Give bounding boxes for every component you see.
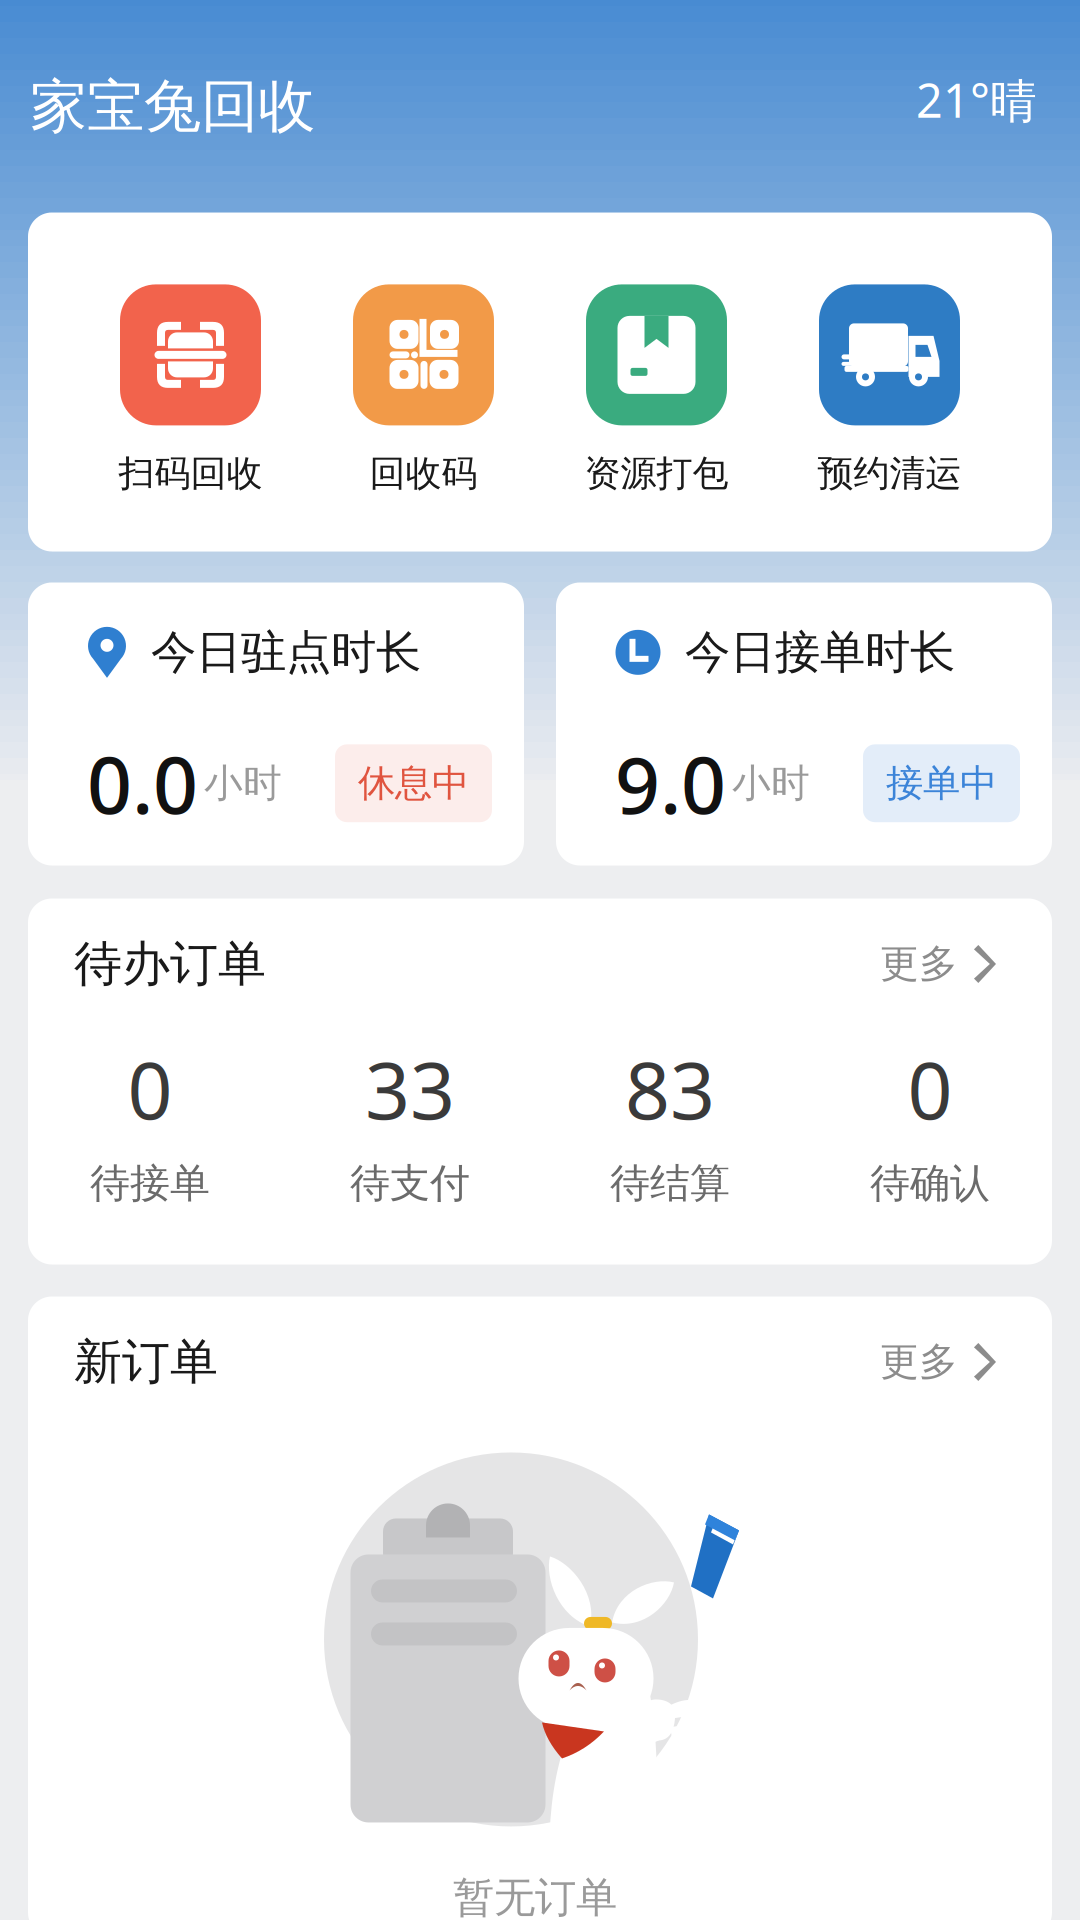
- staticText: 家宝兔回收: [30, 71, 315, 142]
- staticText: 小时: [732, 759, 810, 807]
- staticText: 更多: [880, 940, 958, 988]
- staticText: 回收码: [369, 451, 477, 496]
- staticText: 今日接单时长: [685, 624, 955, 680]
- staticText: 接单中: [886, 760, 997, 806]
- button[interactable]: 0: [800, 1036, 1060, 1216]
- staticText: 待接单: [90, 1159, 210, 1208]
- staticText: 待办订单: [74, 934, 266, 993]
- staticText: 资源打包: [584, 451, 728, 496]
- button[interactable]: 资源打包: [540, 212, 773, 551]
- button[interactable]: 21°晴: [916, 69, 1037, 131]
- staticText: 21°晴: [916, 69, 1037, 131]
- staticText: 扫码回收: [118, 451, 262, 496]
- button[interactable]: 更多: [880, 940, 996, 988]
- staticText: 小时: [204, 759, 282, 807]
- staticText: 休息中: [358, 760, 469, 806]
- staticText: 暂无订单: [453, 1872, 617, 1920]
- staticText: 0: [127, 1036, 172, 1141]
- staticText: 今日驻点时长: [151, 624, 421, 680]
- staticText: 0.0: [87, 731, 198, 835]
- staticText: 待结算: [610, 1159, 730, 1208]
- staticText: 待支付: [350, 1159, 470, 1208]
- button[interactable]: 0: [20, 1036, 280, 1216]
- staticText: 预约清运: [817, 451, 961, 496]
- staticText: 83: [625, 1036, 715, 1141]
- staticText: 9.0: [615, 731, 726, 835]
- button[interactable]: 预约清运: [773, 212, 1006, 551]
- staticText: 更多: [880, 1338, 958, 1386]
- staticText: 33: [365, 1036, 455, 1141]
- staticText: 待确认: [870, 1159, 990, 1208]
- button[interactable]: 回收码: [307, 212, 540, 551]
- button[interactable]: 33: [280, 1036, 540, 1216]
- staticText: 0: [907, 1036, 952, 1141]
- button[interactable]: 扫码回收: [74, 212, 307, 551]
- staticText: 新订单: [74, 1332, 218, 1391]
- button[interactable]: 83: [540, 1036, 800, 1216]
- button[interactable]: 更多: [880, 1338, 996, 1386]
